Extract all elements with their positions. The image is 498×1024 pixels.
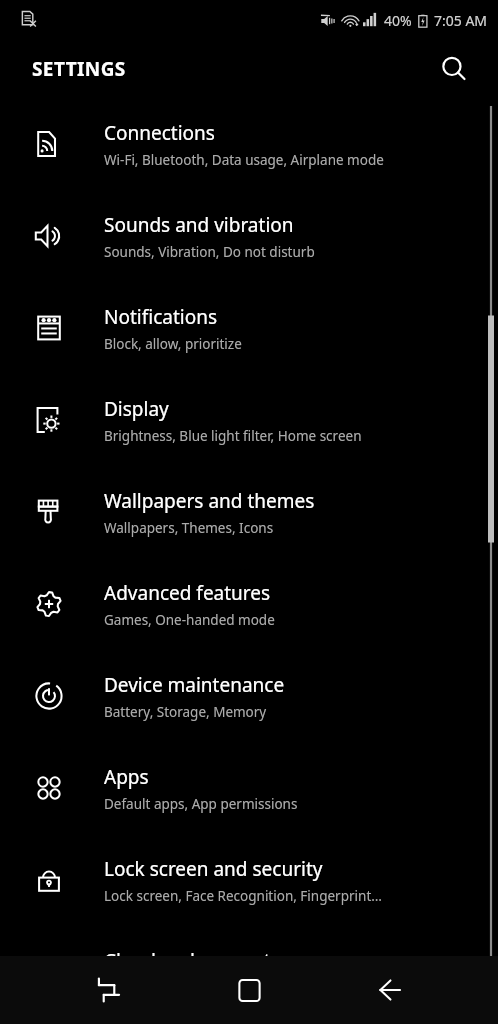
staticText: Connections xyxy=(104,120,215,146)
staticText: Cloud and accounts xyxy=(104,948,280,974)
staticText: 7:05 AM xyxy=(434,11,488,30)
staticText: Block, allow, prioritize xyxy=(104,335,242,353)
staticText: Wallpapers, Themes, Icons xyxy=(104,519,274,537)
staticText: Advanced features xyxy=(104,580,271,606)
staticText: Wi-Fi, Bluetooth, Data usage, Airplane m… xyxy=(104,151,384,169)
button[interactable]: Sounds and vibration xyxy=(0,190,498,282)
staticText: Lock screen, Face Recognition, Fingerpri… xyxy=(104,887,382,905)
button[interactable]: Connections xyxy=(0,98,498,190)
staticText: Backup and restore xyxy=(104,979,228,997)
staticText: Device maintenance xyxy=(104,672,285,698)
staticText: Battery, Storage, Memory xyxy=(104,703,267,721)
staticText: Wallpapers and themes xyxy=(104,488,315,514)
staticText: Lock screen and security xyxy=(104,856,323,882)
button[interactable]: Recents xyxy=(77,958,141,1022)
staticText: Display xyxy=(104,396,169,422)
button[interactable]: Advanced features xyxy=(0,558,498,650)
button[interactable]: Lock screen and security xyxy=(0,834,498,926)
staticText: 40% xyxy=(384,11,412,30)
staticText: Games, One-handed mode xyxy=(104,611,275,629)
button[interactable]: Notifications xyxy=(0,282,498,374)
staticText: Default apps, App permissions xyxy=(104,795,298,813)
button[interactable]: Cloud and accounts xyxy=(0,926,498,1018)
staticText: Sounds and vibration xyxy=(104,212,294,238)
staticText: Notifications xyxy=(104,304,218,330)
button[interactable]: Device maintenance xyxy=(0,650,498,742)
staticText: Sounds, Vibration, Do not disturb xyxy=(104,243,315,261)
button[interactable]: Wallpapers and themes xyxy=(0,466,498,558)
staticText: Apps xyxy=(104,764,149,790)
button[interactable]: Search xyxy=(430,45,478,93)
button[interactable]: Apps xyxy=(0,742,498,834)
staticText: Brightness, Blue light filter, Home scre… xyxy=(104,427,362,445)
button[interactable]: Back xyxy=(358,958,422,1022)
staticText: SETTINGS xyxy=(32,56,126,82)
button[interactable]: Display xyxy=(0,374,498,466)
button[interactable]: Home xyxy=(217,958,281,1022)
